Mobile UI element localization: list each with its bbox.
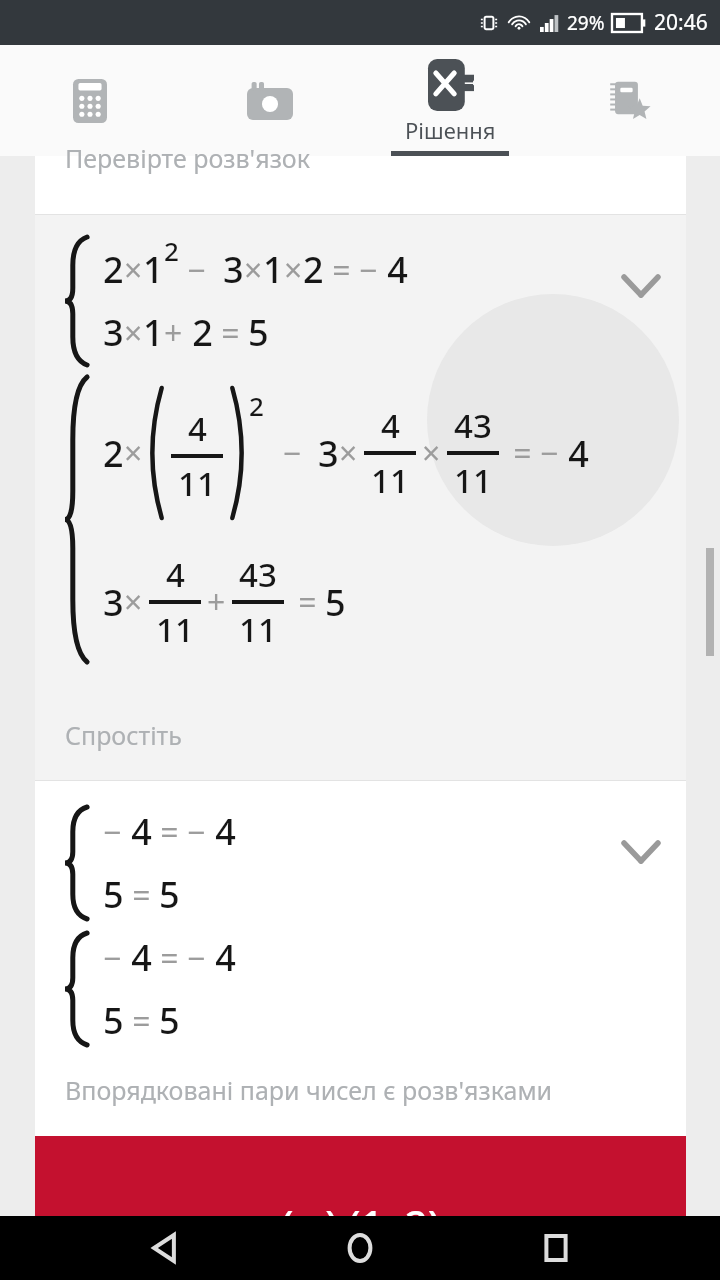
- staticText: =: [213, 311, 248, 355]
- staticText: −: [540, 431, 559, 475]
- staticText: 4: [166, 552, 185, 597]
- staticText: 11: [371, 458, 409, 503]
- staticText: =: [324, 248, 359, 292]
- staticText: 11: [178, 461, 216, 506]
- button[interactable]: Expand step: [618, 829, 664, 875]
- staticText: 4: [559, 429, 589, 478]
- staticText: −: [103, 810, 122, 854]
- staticText: 4: [378, 245, 408, 294]
- staticText: 3: [103, 578, 124, 627]
- button[interactable]: Рішення: [360, 45, 540, 156]
- staticText: 5: [159, 996, 180, 1045]
- staticText: 2: [303, 245, 324, 294]
- button[interactable]: Expand step: [618, 263, 664, 309]
- staticText: +: [164, 311, 183, 355]
- staticText: 5: [159, 870, 180, 919]
- staticText: Впорядковані пари чисел є розв'язками: [65, 1073, 553, 1107]
- staticText: 2: [164, 233, 179, 268]
- staticText: ×: [284, 248, 303, 292]
- staticText: −: [359, 248, 378, 292]
- staticText: 4: [188, 406, 207, 451]
- staticText: 43: [454, 403, 492, 448]
- staticText: 5: [103, 996, 124, 1045]
- staticText: 1: [143, 308, 164, 357]
- staticText: ×: [124, 431, 143, 475]
- staticText: −: [187, 936, 206, 980]
- staticText: =: [290, 580, 325, 624]
- staticText: 43: [239, 552, 277, 597]
- staticText: 4: [122, 933, 152, 982]
- staticText: 5: [103, 870, 124, 919]
- staticText: =: [152, 936, 187, 980]
- staticText: 2: [249, 388, 264, 423]
- button[interactable]: Back: [132, 1216, 196, 1280]
- staticText: =: [152, 810, 187, 854]
- staticText: ×: [422, 431, 441, 475]
- staticText: 11: [239, 607, 277, 652]
- button[interactable]: Camera: [180, 45, 360, 156]
- staticText: =: [124, 873, 159, 917]
- button[interactable]: Home: [328, 1216, 392, 1280]
- staticText: =: [505, 431, 540, 475]
- staticText: 5: [325, 578, 346, 627]
- staticText: 4: [206, 933, 236, 982]
- staticText: ( , ) (1, 2): [281, 1197, 441, 1251]
- staticText: 11: [156, 607, 194, 652]
- staticText: −: [266, 431, 318, 475]
- staticText: 5: [248, 308, 269, 357]
- staticText: −: [187, 810, 206, 854]
- staticText: 4: [122, 807, 152, 856]
- staticText: 4: [206, 807, 236, 856]
- staticText: ×: [124, 580, 143, 624]
- staticText: +: [207, 580, 226, 624]
- staticText: 3: [318, 429, 339, 478]
- button[interactable]: Recents: [524, 1216, 588, 1280]
- staticText: 1: [263, 245, 284, 294]
- staticText: 3: [223, 245, 244, 294]
- button[interactable]: Calculator: [0, 45, 180, 156]
- staticText: −: [103, 936, 122, 980]
- staticText: 29%: [567, 10, 605, 36]
- staticText: −: [179, 248, 223, 292]
- staticText: 20:46: [654, 8, 708, 37]
- staticText: =: [124, 999, 159, 1043]
- button[interactable]: Favorites: [540, 45, 720, 156]
- staticText: 2: [103, 245, 124, 294]
- staticText: 4: [381, 403, 400, 448]
- staticText: Рішення: [405, 115, 496, 145]
- staticText: 2: [183, 308, 213, 357]
- staticText: ×: [124, 311, 143, 355]
- staticText: 1: [143, 245, 164, 294]
- staticText: ×: [124, 248, 143, 292]
- staticText: Спростіть: [65, 718, 182, 752]
- staticText: ×: [244, 248, 263, 292]
- staticText: 2: [103, 429, 124, 478]
- staticText: ×: [339, 431, 358, 475]
- staticText: Перевірте розв'язок: [65, 141, 310, 175]
- button[interactable]: ( , ) (1, 2): [35, 1136, 686, 1216]
- staticText: 11: [454, 458, 492, 503]
- staticText: 3: [103, 308, 124, 357]
